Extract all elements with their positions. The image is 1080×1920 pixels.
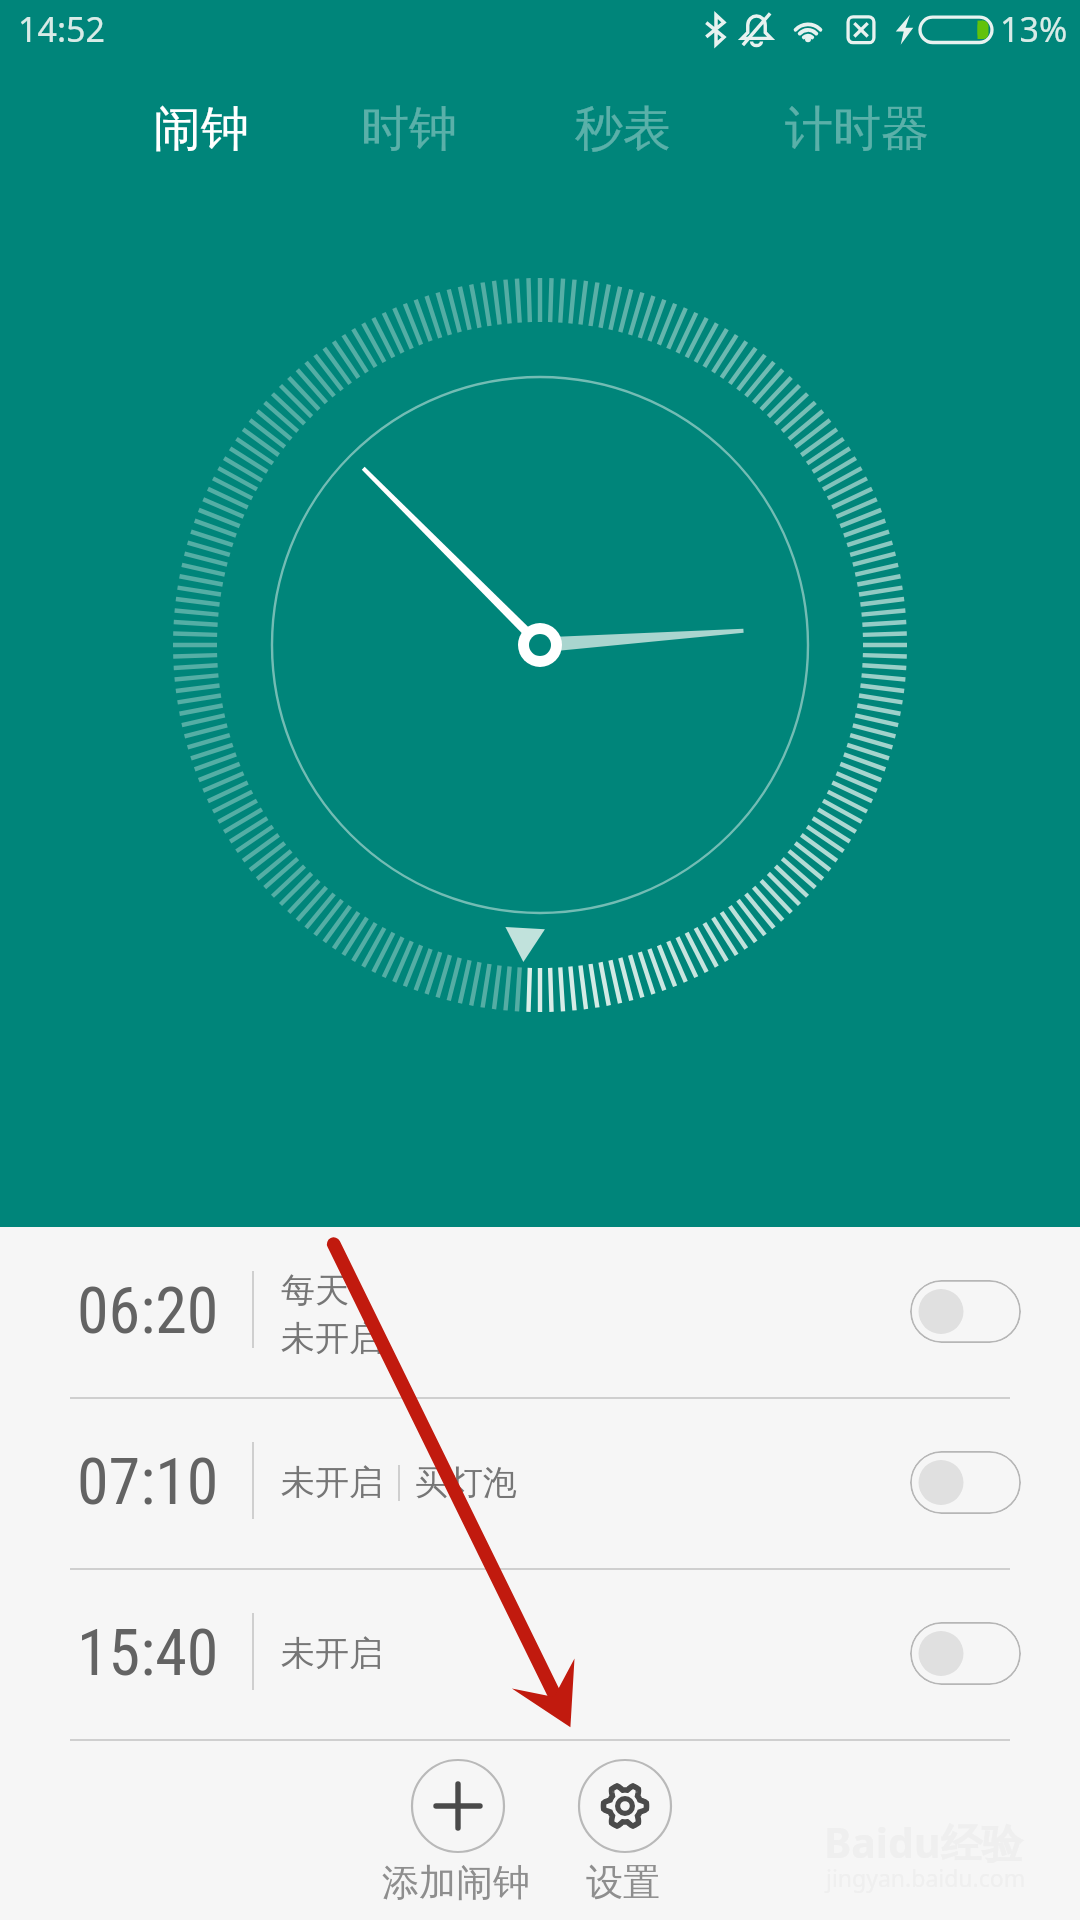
button[interactable]: 秒表 xyxy=(563,79,683,179)
staticText: 07:10 xyxy=(77,1445,219,1520)
button[interactable]: 计时器 xyxy=(772,79,942,179)
staticText: 未开启 xyxy=(281,1317,383,1360)
button[interactable]: 时钟 xyxy=(349,79,469,179)
staticText: 未开启 xyxy=(281,1632,383,1675)
button[interactable]: Alarm on/off toggle xyxy=(910,1622,1021,1685)
staticText: 每天 xyxy=(281,1269,349,1312)
staticText: 未开启 xyxy=(281,1461,383,1504)
staticText: Baidu经验 xyxy=(824,1814,1023,1870)
staticText: 14:52 xyxy=(18,6,105,52)
staticText: 13% xyxy=(1000,6,1068,52)
staticText: 15:40 xyxy=(77,1616,219,1691)
button[interactable]: 设置 xyxy=(540,1755,710,1915)
button[interactable]: 06:20 xyxy=(0,1227,1080,1397)
staticText: 时钟 xyxy=(361,99,457,159)
staticText: 设置 xyxy=(586,1859,660,1906)
staticText: 添加闹钟 xyxy=(382,1859,530,1906)
button[interactable]: Alarm on/off toggle xyxy=(910,1280,1021,1343)
button[interactable]: 闹钟 xyxy=(141,79,261,179)
staticText: 秒表 xyxy=(575,99,671,159)
button[interactable]: 07:10 xyxy=(0,1398,1080,1568)
staticText: 闹钟 xyxy=(153,99,249,159)
staticText: 计时器 xyxy=(785,99,929,159)
button[interactable]: 15:40 xyxy=(0,1569,1080,1739)
staticText: 买灯泡 xyxy=(415,1461,517,1504)
button[interactable]: 添加闹钟 xyxy=(373,1755,543,1915)
staticText: 06:20 xyxy=(77,1274,219,1349)
button[interactable]: Alarm on/off toggle xyxy=(910,1451,1021,1514)
